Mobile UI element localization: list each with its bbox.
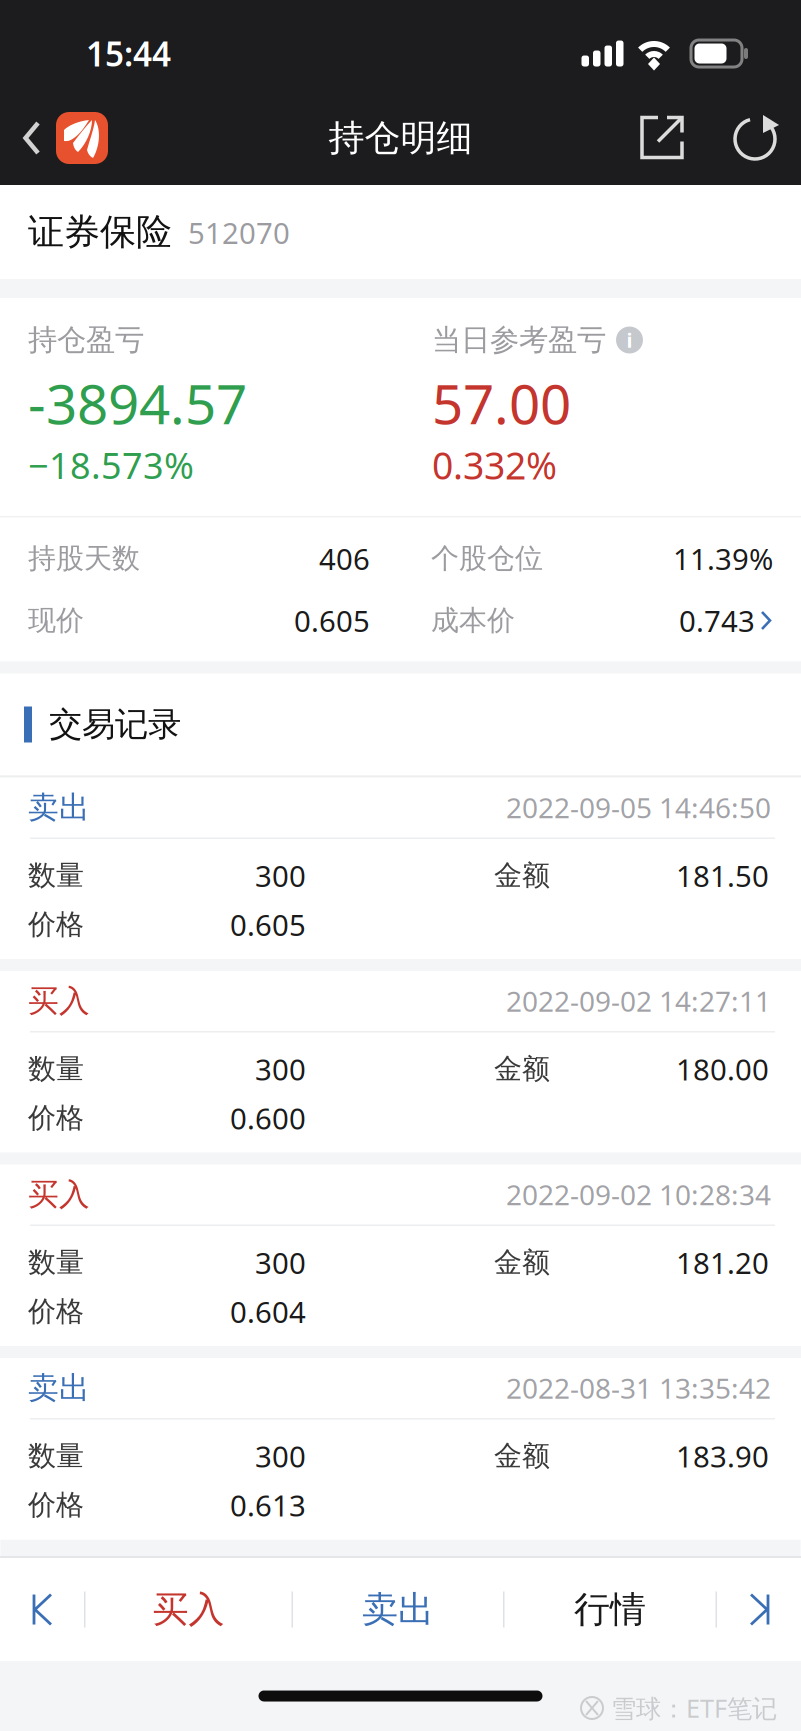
- staticText: 180.00: [676, 1049, 769, 1088]
- staticText: 买入: [152, 1587, 224, 1632]
- staticText: 雪球：ETF笔记: [611, 1691, 777, 1725]
- staticText: 数量: [28, 858, 84, 893]
- staticText: 0.613: [230, 1485, 306, 1524]
- staticText: 2022-08-31 13:35:42: [506, 1369, 771, 1407]
- staticText: 300: [255, 1243, 306, 1282]
- staticText: 价格: [28, 1101, 84, 1135]
- staticText: 183.90: [676, 1436, 769, 1475]
- staticText: 0.604: [230, 1292, 306, 1331]
- staticText: 卖出: [28, 789, 90, 826]
- staticText: 0.332%: [432, 440, 557, 490]
- staticText: 当日参考盈亏: [432, 322, 606, 358]
- staticText: 价格: [28, 1488, 84, 1522]
- staticText: 15:44: [86, 31, 171, 76]
- staticText: 行情: [574, 1587, 646, 1632]
- staticText: 2022-09-02 10:28:34: [506, 1176, 771, 1213]
- staticText: 300: [255, 1049, 306, 1088]
- staticText: 买入: [28, 1176, 90, 1213]
- staticText: 价格: [28, 1294, 84, 1329]
- button[interactable]: Refresh: [711, 88, 801, 187]
- staticText: 卖出: [362, 1587, 434, 1632]
- staticText: 0.600: [230, 1098, 306, 1137]
- staticText: 0.605: [230, 905, 306, 944]
- staticText: 300: [255, 1436, 306, 1475]
- staticText: 金额: [494, 1245, 550, 1280]
- button[interactable]: 买入: [85, 1558, 291, 1661]
- staticText: 0.605: [294, 601, 370, 640]
- staticText: 0.743: [679, 601, 755, 640]
- staticText: 交易记录: [49, 704, 181, 745]
- staticText: i: [626, 327, 632, 353]
- staticText: 成本价: [431, 603, 515, 638]
- staticText: 现价: [28, 603, 84, 638]
- button[interactable]: Previous: [0, 1558, 84, 1661]
- button[interactable]: 卖出: [293, 1558, 503, 1661]
- staticText: 2022-09-05 14:46:50: [506, 789, 771, 826]
- staticText: 金额: [494, 1052, 550, 1086]
- staticText: 证券保险: [28, 210, 172, 254]
- button[interactable]: Back: [0, 88, 120, 187]
- staticText: -3894.57: [28, 367, 247, 439]
- staticText: 512070: [188, 213, 290, 252]
- staticText: 300: [255, 856, 306, 895]
- button[interactable]: Share: [614, 88, 711, 187]
- staticText: 数量: [28, 1052, 84, 1086]
- staticText: 金额: [494, 1439, 550, 1473]
- staticText: 181.20: [676, 1243, 769, 1282]
- staticText: 金额: [494, 858, 550, 893]
- button[interactable]: 行情: [504, 1558, 715, 1661]
- staticText: 持股天数: [28, 541, 140, 576]
- staticText: 2022-09-02 14:27:11: [506, 982, 771, 1020]
- staticText: 57.00: [432, 367, 571, 439]
- staticText: −18.573%: [28, 441, 194, 489]
- staticText: 181.50: [676, 856, 769, 895]
- staticText: 持仓明细: [328, 116, 472, 160]
- staticText: 数量: [28, 1439, 84, 1473]
- staticText: 个股仓位: [431, 541, 543, 576]
- staticText: 卖出: [28, 1369, 90, 1407]
- staticText: 406: [319, 539, 370, 578]
- staticText: 数量: [28, 1245, 84, 1280]
- staticText: 买入: [28, 982, 90, 1020]
- button[interactable]: Next: [717, 1558, 801, 1661]
- staticText: 价格: [28, 907, 84, 942]
- staticText: 11.39%: [673, 539, 773, 578]
- staticText: 持仓盈亏: [28, 322, 144, 358]
